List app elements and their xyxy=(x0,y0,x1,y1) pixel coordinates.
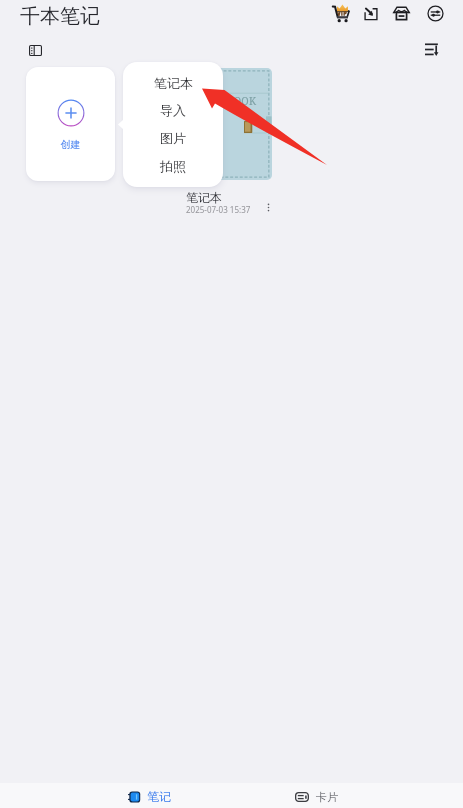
button[interactable]: NOTEBOOK xyxy=(182,68,272,180)
staticText: 拍照 xyxy=(160,158,186,174)
staticText: 2025-07-03 15:37 xyxy=(186,204,251,215)
button[interactable]: 笔记 xyxy=(122,785,177,808)
button[interactable]: Import xyxy=(358,1,383,26)
staticText: 导入 xyxy=(160,102,186,118)
button[interactable]: 卡片 xyxy=(289,786,344,808)
button[interactable]: Settings xyxy=(423,1,448,26)
button[interactable]: 笔记本 xyxy=(123,69,223,96)
staticText: 笔记 xyxy=(147,789,171,804)
staticText: 创建 xyxy=(26,138,115,151)
button[interactable]: VIP store xyxy=(329,1,354,26)
button[interactable]: Shop xyxy=(389,1,414,26)
staticText: 笔记本 xyxy=(154,75,193,91)
button[interactable]: 图片 xyxy=(123,124,223,152)
button[interactable]: 创建 xyxy=(26,67,115,181)
button[interactable]: More options xyxy=(258,197,278,217)
staticText: 笔记本 xyxy=(186,190,222,205)
button[interactable]: 导入 xyxy=(123,96,223,124)
staticText: 卡片 xyxy=(316,790,338,804)
staticText: 图片 xyxy=(160,130,186,146)
staticText: 千本笔记 xyxy=(20,4,100,29)
staticText: NOTEBOOK xyxy=(199,94,257,108)
button[interactable]: Layout view xyxy=(24,39,46,61)
button[interactable]: 拍照 xyxy=(123,152,223,180)
button[interactable]: Sort xyxy=(421,38,443,60)
